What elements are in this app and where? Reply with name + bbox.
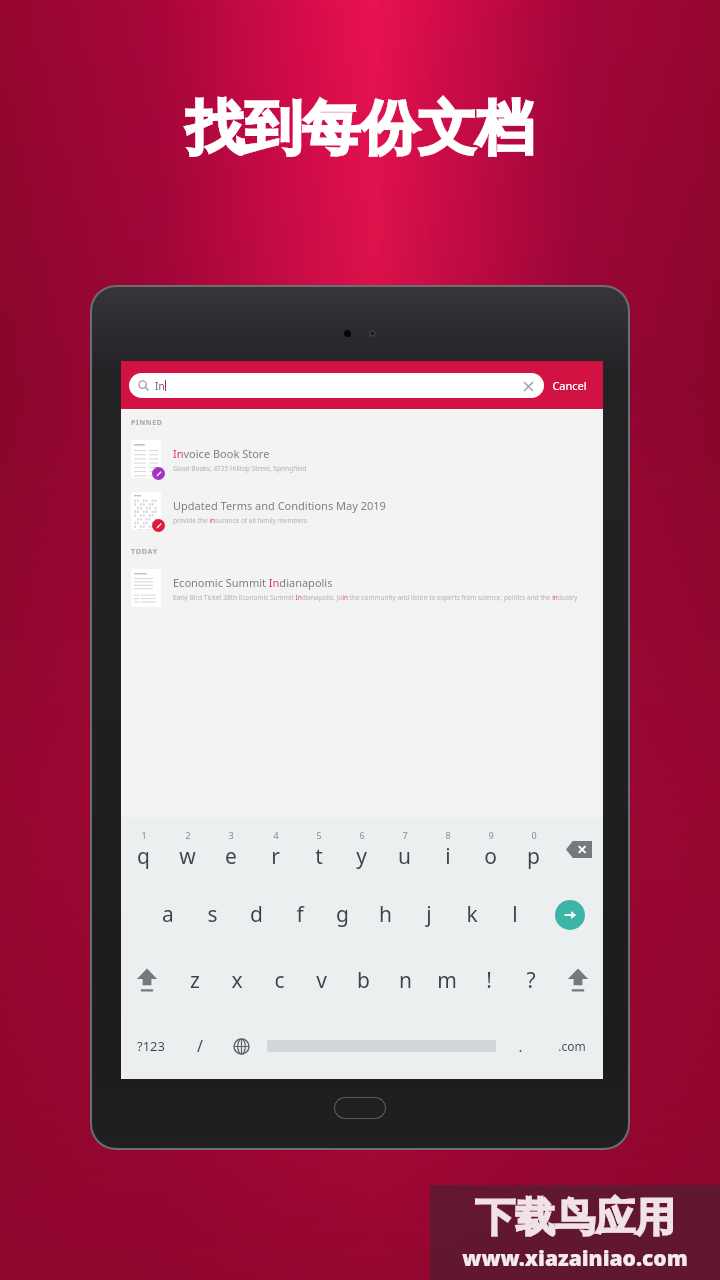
button[interactable]: / (180, 1013, 220, 1079)
staticText: g (336, 900, 349, 929)
button[interactable]: 6 (340, 817, 383, 882)
staticText: 6 (359, 829, 365, 841)
staticText: t (315, 842, 323, 871)
button[interactable]: Economic Summit Indianapolis (121, 562, 603, 614)
button[interactable]: n (384, 947, 426, 1013)
button[interactable]: m (426, 947, 468, 1013)
staticText: u (398, 842, 411, 871)
staticText: 3 (228, 829, 234, 841)
button[interactable]: Backspace (555, 817, 603, 882)
button[interactable]: Clear search (521, 379, 535, 393)
button[interactable]: a (146, 882, 190, 947)
button[interactable]: .com (540, 1013, 603, 1079)
staticText: p (527, 842, 540, 871)
staticText: www.xiazainiao.com (462, 1244, 688, 1273)
staticText: x (231, 966, 243, 995)
button[interactable]: In (129, 373, 544, 398)
staticText: o (484, 842, 497, 871)
button[interactable]: z (173, 947, 216, 1013)
staticText: k (466, 900, 478, 929)
staticText: ?123 (137, 1037, 165, 1055)
staticText: TODAY (131, 547, 158, 557)
staticText: 4 (273, 829, 279, 841)
staticText: l (512, 900, 518, 929)
button[interactable]: l (493, 882, 536, 947)
staticText: provide the insurance of all family memb… (173, 516, 308, 525)
staticText: In (155, 379, 165, 393)
button[interactable]: s (190, 882, 234, 947)
staticText: .com (558, 1038, 586, 1054)
staticText: q (137, 842, 150, 871)
staticText: m (437, 966, 457, 995)
button[interactable]: k (450, 882, 493, 947)
staticText: Economic Summit Indianapolis (173, 575, 333, 590)
staticText: 8 (445, 829, 451, 841)
staticText: a (162, 900, 174, 929)
staticText: 9 (488, 829, 494, 841)
button[interactable]: c (258, 947, 300, 1013)
button[interactable]: g (321, 882, 364, 947)
staticText: d (250, 900, 263, 929)
button[interactable]: 4 (253, 817, 297, 882)
staticText: Cancel (552, 378, 587, 393)
staticText: . (518, 1036, 523, 1056)
staticText: 2 (185, 829, 191, 841)
staticText: f (296, 900, 304, 929)
button[interactable]: d (234, 882, 278, 947)
button[interactable]: ?123 (121, 1013, 180, 1079)
button[interactable]: . (500, 1013, 540, 1079)
staticText: PINNED (131, 418, 163, 428)
staticText: 7 (402, 829, 408, 841)
button[interactable]: ! (468, 947, 510, 1013)
staticText: w (179, 842, 196, 871)
staticText: z (190, 966, 200, 995)
button[interactable]: h (364, 882, 407, 947)
button[interactable]: Home (335, 1098, 385, 1118)
button[interactable]: Shift (552, 947, 603, 1013)
button[interactable]: Space (267, 1013, 496, 1079)
staticText: j (426, 900, 432, 929)
staticText: 1 (141, 829, 147, 841)
button[interactable]: ? (510, 947, 552, 1013)
staticText: Updated Terms and Conditions May 2019 (173, 498, 386, 513)
button[interactable]: b (342, 947, 384, 1013)
staticText: 5 (316, 829, 322, 841)
button[interactable]: Change language (220, 1013, 263, 1079)
staticText: i (445, 842, 451, 871)
staticText: / (197, 1035, 203, 1057)
staticText: Good Books, 4725 Hilltop Street, Springf… (173, 464, 307, 473)
staticText: c (274, 966, 285, 995)
button[interactable]: Invoice Book Store (121, 433, 603, 485)
button[interactable]: 1 (121, 817, 165, 882)
button[interactable]: 9 (469, 817, 512, 882)
staticText: 下载鸟应用 (475, 1192, 675, 1242)
button[interactable]: Shift (121, 947, 173, 1013)
staticText: 找到每份文档 (186, 92, 534, 165)
staticText: b (357, 966, 370, 995)
staticText: e (225, 842, 237, 871)
button[interactable]: 0 (512, 817, 555, 882)
button[interactable]: Updated Terms and Conditions May 2019 (121, 485, 603, 537)
button[interactable]: 5 (297, 817, 340, 882)
button[interactable]: Cancel (544, 374, 595, 397)
button[interactable]: 7 (383, 817, 426, 882)
staticText: r (271, 842, 280, 871)
staticText: n (399, 966, 412, 995)
staticText: s (207, 900, 218, 929)
staticText: h (379, 900, 392, 929)
button[interactable]: Search (536, 882, 603, 947)
button[interactable]: 8 (426, 817, 469, 882)
button[interactable]: x (216, 947, 258, 1013)
staticText: Invoice Book Store (173, 446, 270, 461)
staticText: ? (526, 966, 536, 995)
button[interactable]: f (278, 882, 321, 947)
button[interactable]: 3 (209, 817, 253, 882)
staticText: Early Bird Ticket 28th Economic Summit I… (173, 593, 578, 602)
button[interactable]: j (407, 882, 450, 947)
button[interactable]: 2 (165, 817, 209, 882)
staticText: 0 (531, 829, 537, 841)
staticText: y (356, 842, 367, 871)
button[interactable]: v (300, 947, 342, 1013)
staticText: v (316, 966, 327, 995)
staticText: ! (486, 966, 492, 995)
